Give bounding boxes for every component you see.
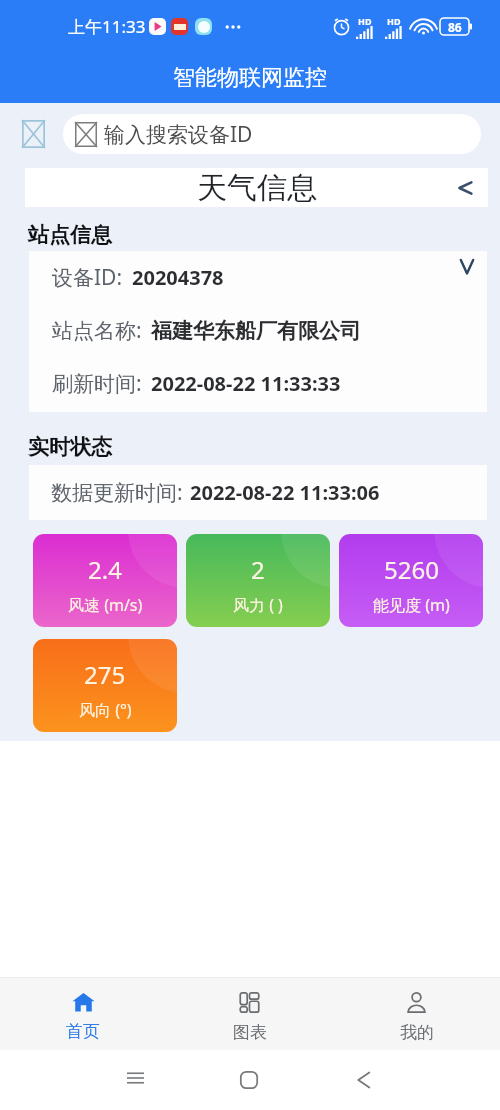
staticText: 福建华东船厂有限公司 bbox=[151, 318, 361, 344]
staticText: 首页 bbox=[66, 1021, 100, 1042]
staticText: 5260 bbox=[384, 553, 439, 586]
button[interactable]: 275 bbox=[33, 639, 177, 732]
button[interactable]: 5260 bbox=[339, 534, 483, 627]
other: Recents bbox=[127, 1071, 144, 1085]
staticText: 输入搜索设备ID bbox=[104, 120, 253, 149]
other: Expand bbox=[460, 259, 474, 274]
button[interactable]: 2 bbox=[186, 534, 330, 627]
staticText: 275 bbox=[84, 658, 126, 691]
staticText: 设备ID: bbox=[52, 263, 123, 292]
staticText: 风向 (°) bbox=[79, 699, 132, 721]
staticText: HD bbox=[358, 15, 372, 27]
button[interactable]: 输入搜索设备ID bbox=[63, 114, 481, 154]
other: Home bbox=[240, 1071, 258, 1089]
staticText: 2022-08-22 11:33:06 bbox=[190, 479, 380, 506]
staticText: 站点名称: bbox=[52, 316, 142, 345]
staticText: 风力 ( ) bbox=[233, 594, 283, 616]
staticText: 我的 bbox=[400, 1022, 434, 1043]
staticText: 2022-08-22 11:33:33 bbox=[151, 370, 341, 397]
button[interactable]: 2.4 bbox=[33, 534, 177, 627]
staticText: 天气信息 bbox=[197, 169, 317, 207]
staticText: 数据更新时间: bbox=[51, 478, 183, 507]
staticText: 20204378 bbox=[132, 264, 224, 291]
staticText: HD bbox=[387, 15, 401, 27]
staticText: 智能物联网监控 bbox=[173, 64, 327, 92]
staticText: 能见度 (m) bbox=[373, 594, 450, 616]
other: Back bbox=[357, 1071, 370, 1089]
other: Previous bbox=[457, 178, 473, 198]
staticText: 实时状态 bbox=[28, 434, 112, 460]
staticText: 86 bbox=[448, 19, 462, 35]
button[interactable]: 首页 bbox=[0, 978, 166, 1042]
staticText: 站点信息 bbox=[28, 222, 112, 248]
button[interactable]: 天气信息 bbox=[25, 168, 488, 207]
staticText: 风速 (m/s) bbox=[68, 594, 143, 616]
staticText: 上午11:33 bbox=[68, 15, 146, 38]
button[interactable]: 我的 bbox=[333, 978, 500, 1043]
staticText: 图表 bbox=[233, 1022, 267, 1043]
staticText: 2.4 bbox=[88, 553, 122, 586]
staticText: 刷新时间: bbox=[52, 369, 142, 398]
button[interactable]: 图表 bbox=[166, 978, 333, 1043]
staticText: 2 bbox=[251, 553, 265, 586]
